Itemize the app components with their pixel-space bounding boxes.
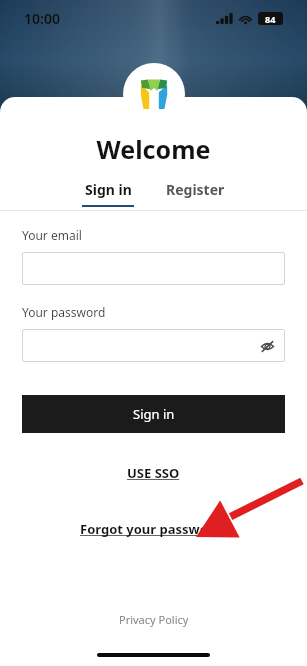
staticText: 10:00	[24, 9, 60, 28]
button[interactable]: Register	[156, 180, 235, 207]
staticText: Register	[166, 180, 225, 199]
staticText: Sign in	[85, 180, 132, 199]
staticText: Welcome	[0, 132, 307, 166]
staticText: Your email	[22, 227, 82, 243]
button[interactable]: Privacy Policy	[115, 608, 193, 631]
staticText: 84	[265, 13, 276, 25]
button[interactable]: USE SSO	[121, 462, 186, 484]
staticText: Sign in	[133, 405, 175, 423]
button[interactable]: Sign in	[72, 180, 144, 207]
button[interactable]	[22, 252, 285, 285]
staticText: Your password	[22, 304, 106, 320]
button[interactable]: Show password	[22, 329, 285, 362]
button[interactable]: Forgot your password?	[74, 518, 234, 540]
button[interactable]: Sign in	[22, 395, 285, 433]
button[interactable]: Show password	[257, 336, 277, 356]
